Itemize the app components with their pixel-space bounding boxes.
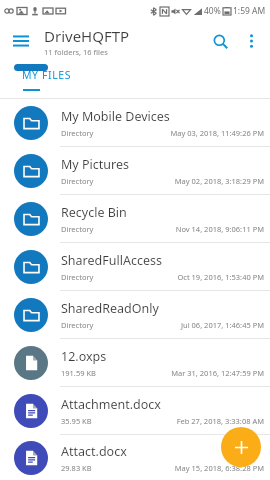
- button[interactable]: SharedFullAccess: [0, 243, 270, 291]
- button[interactable]: My Mobile Devices: [0, 99, 270, 147]
- staticText: Attachment.docx: [61, 396, 161, 413]
- button[interactable]: Recycle Bin: [0, 195, 270, 243]
- staticText: Attact.docx: [61, 443, 127, 460]
- staticText: May 15, 2018, 6:38:28 PM: [174, 463, 264, 473]
- staticText: Directory: [61, 176, 94, 186]
- staticText: Directory: [61, 224, 94, 234]
- staticText: Directory: [61, 128, 94, 138]
- staticText: May 02, 2018, 3:18:29 PM: [174, 176, 264, 186]
- staticText: May 03, 2018, 11:49:26 PM: [170, 128, 264, 138]
- staticText: SharedFullAccess: [61, 252, 162, 269]
- staticText: Recycle Bin: [61, 204, 127, 221]
- staticText: 35.95 KB: [61, 416, 92, 426]
- staticText: 40%: [204, 5, 221, 17]
- button[interactable]: More options: [236, 26, 266, 56]
- button[interactable]: Add: [221, 427, 261, 467]
- staticText: 11 folders, 16 files: [44, 47, 108, 57]
- button[interactable]: Attact.docx: [0, 435, 270, 480]
- button[interactable]: Open navigation drawer: [6, 26, 36, 56]
- staticText: My Pictures: [61, 156, 129, 173]
- staticText: Oct 19, 2016, 1:53:40 PM: [177, 272, 264, 282]
- staticText: 1:59 AM: [233, 5, 266, 17]
- button[interactable]: SharedReadOnly: [0, 291, 270, 339]
- staticText: SharedReadOnly: [61, 300, 159, 317]
- staticText: Jul 06, 2017, 1:46:45 PM: [181, 320, 264, 330]
- staticText: 29.83 KB: [61, 463, 92, 473]
- staticText: Directory: [61, 320, 94, 330]
- button[interactable]: Search: [204, 25, 236, 57]
- button[interactable]: My Pictures: [0, 147, 270, 195]
- staticText: MY FILES: [22, 68, 72, 82]
- staticText: Nov 14, 2018, 9:06:11 PM: [175, 224, 264, 234]
- staticText: My Mobile Devices: [61, 108, 170, 125]
- staticText: 191.59 KB: [61, 368, 96, 378]
- staticText: Mar 31, 2016, 12:47:59 PM: [171, 368, 264, 378]
- button[interactable]: 12.oxps: [0, 339, 270, 387]
- staticText: Directory: [61, 272, 94, 282]
- button[interactable]: MY FILES: [22, 60, 72, 89]
- button[interactable]: Attachment.docx: [0, 387, 270, 435]
- staticText: Feb 27, 2018, 3:33:08 AM: [176, 416, 264, 426]
- staticText: DriveHQFTP: [44, 26, 130, 46]
- staticText: 12.oxps: [61, 348, 107, 365]
